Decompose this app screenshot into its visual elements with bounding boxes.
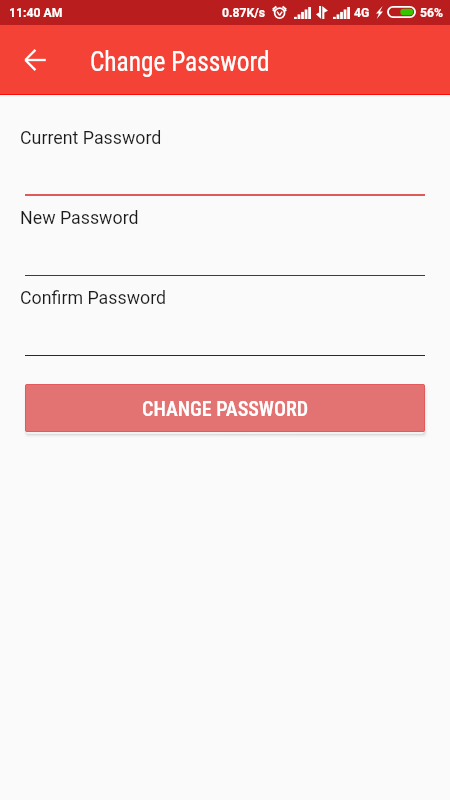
staticText: CHANGE PASSWORD bbox=[142, 397, 309, 420]
staticText: Change Password bbox=[90, 45, 270, 78]
staticText: 56% bbox=[420, 6, 443, 20]
staticText: 0.87K/s bbox=[222, 6, 266, 20]
staticText: New Password bbox=[20, 207, 139, 228]
staticText: Confirm Password bbox=[20, 287, 167, 308]
staticText: 4G bbox=[354, 6, 370, 20]
staticText: Current Password bbox=[20, 127, 162, 148]
staticText: 11:40 AM bbox=[9, 6, 63, 20]
button[interactable]: Back bbox=[14, 39, 56, 81]
button[interactable]: CHANGE PASSWORD bbox=[25, 384, 425, 432]
